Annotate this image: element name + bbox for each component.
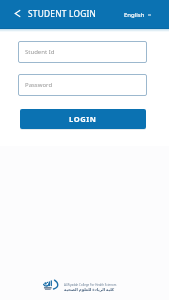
button[interactable]: Student Id: [18, 41, 147, 63]
button[interactable]: Password: [18, 74, 147, 96]
staticText: STUDENT LOGIN: [28, 8, 97, 19]
button[interactable]: English: [116, 4, 169, 26]
staticText: Al-Riyadah College For Health Sciences: [64, 283, 117, 287]
staticText: Password: [25, 81, 53, 89]
staticText: LOGIN: [69, 114, 97, 124]
staticText: كلية الريادة للعلوم الصحية: [64, 287, 115, 292]
staticText: Student Id: [25, 48, 55, 56]
staticText: English: [124, 11, 145, 19]
button[interactable]: LOGIN: [20, 109, 146, 129]
button[interactable]: Back: [4, 0, 31, 27]
